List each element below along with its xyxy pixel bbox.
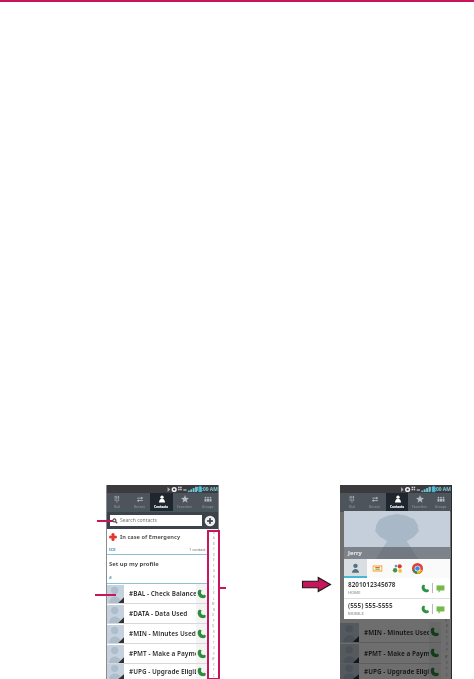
staticText: #MIN - Minutes Used bbox=[129, 629, 196, 638]
button[interactable]: #MIN - Minutes Used bbox=[106, 624, 208, 643]
staticText: R bbox=[446, 624, 448, 628]
button[interactable]: Call bbox=[429, 643, 441, 663]
staticText: A bbox=[213, 536, 215, 540]
button[interactable]: Call bbox=[196, 624, 208, 643]
button[interactable]: Recent bbox=[128, 493, 150, 511]
staticText: Favorites bbox=[177, 505, 192, 509]
button[interactable]: Chrome bbox=[407, 559, 427, 578]
button[interactable]: Call bbox=[429, 622, 441, 642]
staticText: R bbox=[213, 630, 215, 634]
staticText: U bbox=[213, 646, 215, 650]
staticText: M bbox=[212, 602, 215, 606]
staticText: MOBILE bbox=[348, 611, 364, 617]
staticText: F bbox=[213, 564, 215, 568]
button[interactable]: Alphabet index bbox=[208, 529, 219, 679]
button[interactable]: Favorites bbox=[173, 493, 196, 511]
button[interactable]: Recent bbox=[363, 493, 386, 511]
staticText: 8201012345678 bbox=[348, 580, 396, 589]
staticText: B bbox=[213, 542, 215, 546]
staticText: O bbox=[212, 613, 215, 617]
staticText: 11:00 AM bbox=[196, 486, 218, 493]
staticText: C bbox=[213, 547, 215, 551]
button[interactable]: Groups bbox=[430, 493, 452, 511]
button[interactable]: Call bbox=[418, 602, 432, 616]
staticText: Y bbox=[446, 667, 448, 671]
staticText: P bbox=[213, 619, 215, 623]
button[interactable]: Contacts bbox=[386, 493, 408, 511]
staticText: T bbox=[446, 636, 448, 640]
staticText: #PMT - Make a Payment bbox=[129, 649, 196, 658]
button[interactable]: Add contact bbox=[204, 515, 216, 527]
button[interactable]: In case of Emergency bbox=[106, 529, 208, 545]
staticText: K bbox=[213, 591, 215, 595]
staticText: #BAL - Check Balance bbox=[129, 589, 196, 598]
button[interactable]: #PMT - Make a Payment bbox=[106, 644, 208, 663]
button[interactable]: Message bbox=[433, 581, 447, 595]
button[interactable]: #UPG - Upgrade Eligibility bbox=[106, 664, 208, 679]
staticText: In case of Emergency bbox=[120, 533, 181, 541]
staticText: HOME bbox=[348, 590, 361, 596]
button[interactable]: Call bbox=[429, 664, 441, 679]
staticText: (555) 555-5555 bbox=[348, 601, 393, 610]
button[interactable]: Message bbox=[433, 602, 447, 616]
button[interactable]: Search contacts bbox=[110, 515, 202, 526]
staticText: G bbox=[446, 557, 448, 561]
staticText: Q bbox=[445, 618, 448, 622]
staticText: Z bbox=[213, 674, 215, 678]
staticText: E bbox=[446, 545, 448, 549]
staticText: Favorites bbox=[412, 505, 427, 509]
button[interactable]: Groups bbox=[196, 493, 219, 511]
staticText: Dial bbox=[349, 505, 356, 509]
staticText: V bbox=[213, 652, 215, 656]
button[interactable]: Dial bbox=[340, 493, 363, 511]
button[interactable]: Call bbox=[196, 604, 208, 623]
staticText: Groups bbox=[202, 505, 214, 509]
button[interactable]: Contact bbox=[344, 559, 367, 578]
button[interactable]: #BAL - Check Balance bbox=[106, 584, 208, 603]
button[interactable]: #PMT - Make a Payment bbox=[340, 643, 441, 663]
button[interactable]: #UPG - Upgrade Eligibility bbox=[340, 664, 441, 679]
button[interactable]: Set up my profile bbox=[106, 555, 208, 572]
staticText: D bbox=[213, 553, 215, 557]
staticText: Jerry bbox=[348, 549, 362, 557]
staticText: ICE bbox=[109, 547, 116, 553]
staticText: Set up my profile bbox=[109, 560, 159, 568]
staticText: Recent bbox=[369, 505, 380, 509]
button[interactable]: #DATA - Data Used bbox=[106, 604, 208, 623]
button[interactable]: Contacts bbox=[150, 493, 173, 511]
staticText: 11:00 AM bbox=[429, 486, 451, 493]
button[interactable]: Call bbox=[418, 581, 432, 595]
staticText: Contacts bbox=[154, 505, 169, 509]
button[interactable]: Call bbox=[196, 584, 208, 603]
staticText: # bbox=[213, 531, 215, 535]
button[interactable]: Alphabet index bbox=[441, 512, 452, 679]
button[interactable]: Messages bbox=[367, 559, 387, 578]
staticText: J bbox=[213, 586, 214, 590]
button[interactable]: #MIN - Minutes Used bbox=[340, 622, 441, 642]
staticText: I bbox=[213, 580, 214, 584]
button[interactable]: Favorites bbox=[408, 493, 430, 511]
staticText: G bbox=[213, 569, 215, 573]
staticText: Dial bbox=[114, 505, 121, 509]
button[interactable]: Call bbox=[196, 664, 208, 679]
staticText: 1 contact bbox=[189, 547, 206, 552]
button[interactable]: Gallery bbox=[387, 559, 407, 578]
staticText: Search contacts bbox=[120, 517, 157, 524]
button[interactable]: Dial bbox=[106, 493, 128, 511]
button[interactable]: Call bbox=[196, 644, 208, 663]
staticText: Recent bbox=[134, 505, 145, 509]
staticText: #UPG - Upgrade Eligibility bbox=[129, 667, 196, 676]
staticText: E bbox=[213, 558, 215, 562]
staticText: W bbox=[212, 657, 215, 661]
staticText: X bbox=[213, 663, 215, 667]
